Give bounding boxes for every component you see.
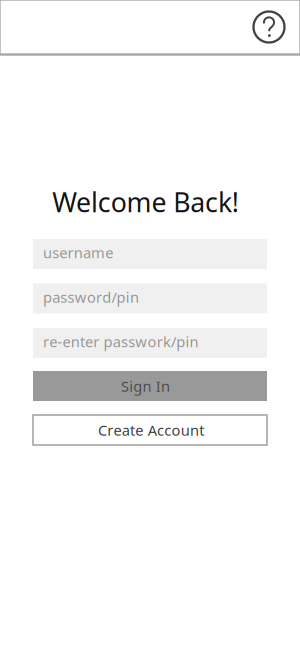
- staticText: Create Account: [98, 420, 204, 440]
- staticText: Welcome Back!: [52, 184, 239, 220]
- staticText: Sign In: [121, 376, 170, 396]
- button[interactable]: Help: [249, 7, 289, 47]
- button[interactable]: Sign In: [33, 371, 267, 401]
- staticText: username: [43, 243, 113, 262]
- button[interactable]: Create Account: [33, 415, 267, 445]
- staticText: re-enter passwork/pin: [43, 332, 199, 351]
- staticText: password/pin: [43, 287, 139, 307]
